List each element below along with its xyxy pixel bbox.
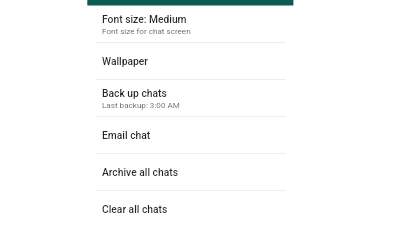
staticText: Clear all chats xyxy=(102,203,168,215)
staticText: Email chat xyxy=(102,129,151,141)
staticText: Font size for chat screen xyxy=(102,26,191,35)
staticText: Back up chats xyxy=(102,87,167,99)
button[interactable]: Archive all chats xyxy=(87,153,293,190)
button[interactable]: Back up chats xyxy=(87,79,293,116)
staticText: Archive all chats xyxy=(102,166,178,178)
staticText: Wallpaper xyxy=(102,55,148,67)
staticText: Last backup: 3:00 AM xyxy=(102,100,180,109)
staticText: Font size: Medium xyxy=(102,13,187,25)
button[interactable]: Email chat xyxy=(87,116,293,153)
button[interactable]: Wallpaper xyxy=(87,42,293,79)
button[interactable]: Clear all chats xyxy=(87,190,293,225)
button[interactable]: Font size: Medium xyxy=(87,5,293,42)
